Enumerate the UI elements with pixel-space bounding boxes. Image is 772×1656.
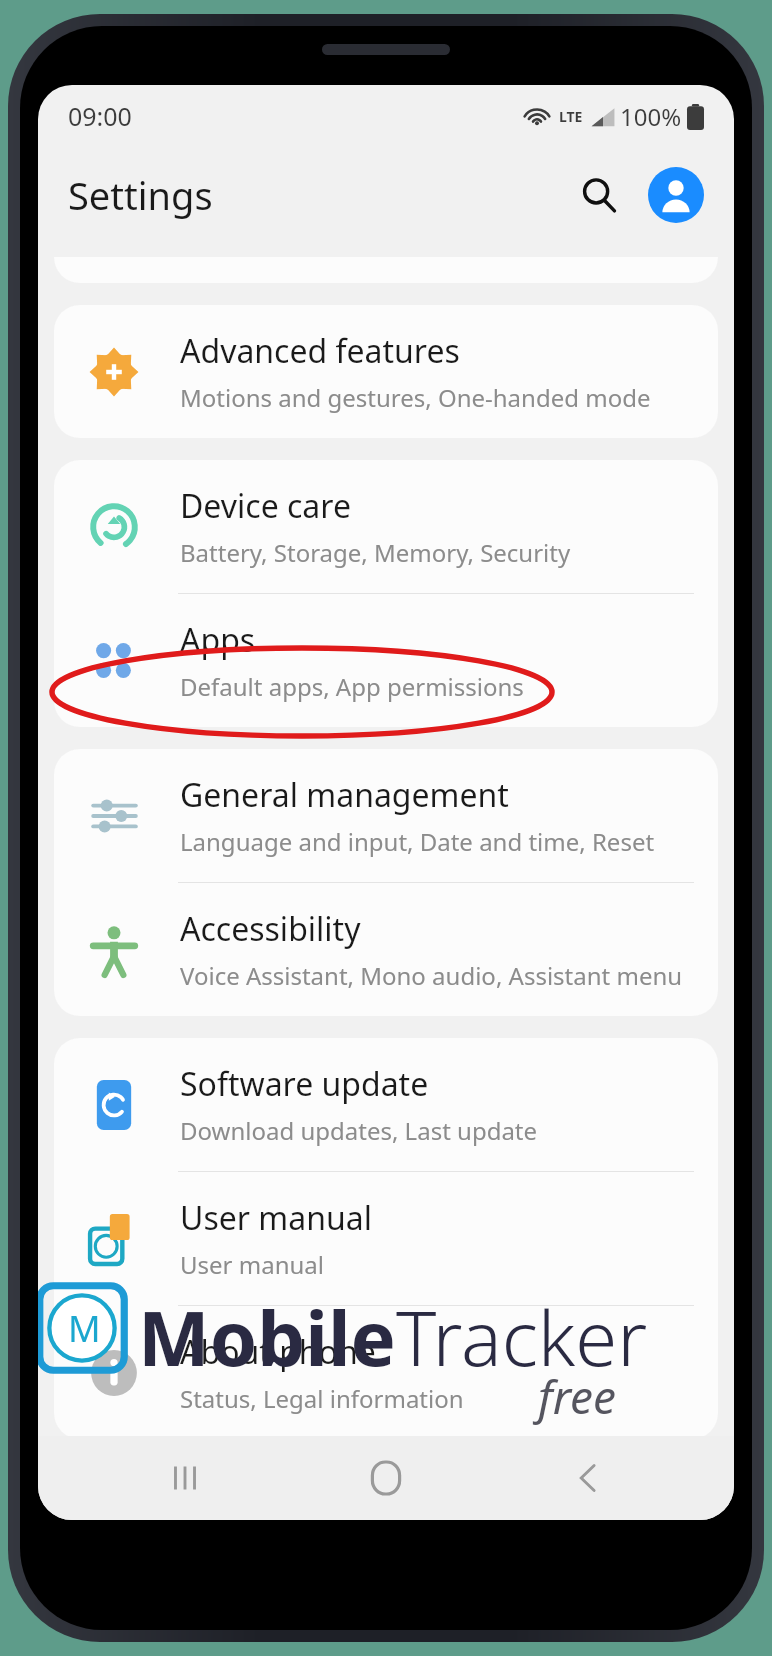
staticText: M: [68, 1304, 101, 1353]
staticText: Accessibility: [180, 907, 361, 951]
button[interactable]: Software update: [54, 1038, 718, 1171]
staticText: Motions and gestures, One-handed mode: [180, 381, 651, 414]
staticText: Voice Assistant, Mono audio, Assistant m…: [180, 959, 683, 992]
button[interactable]: Apps: [54, 594, 718, 727]
button[interactable]: Back: [533, 1441, 643, 1515]
staticText: Default apps, App permissions: [180, 670, 524, 703]
button[interactable]: Home: [331, 1441, 441, 1515]
staticText: Advanced features: [180, 329, 460, 373]
button[interactable]: User manual: [54, 1172, 718, 1305]
staticText: free: [538, 1365, 616, 1428]
staticText: Download updates, Last update: [180, 1114, 538, 1147]
staticText: About phone: [180, 1330, 376, 1374]
staticText: General management: [180, 773, 509, 817]
button[interactable]: Accessibility: [54, 883, 718, 1016]
staticText: 09:00: [68, 99, 132, 133]
button[interactable]: Device care: [54, 460, 718, 593]
staticText: 100%: [620, 100, 682, 133]
staticText: Mobile: [138, 1285, 396, 1389]
staticText: Apps: [180, 618, 256, 662]
button[interactable]: Recents: [130, 1441, 240, 1515]
button[interactable]: General management: [54, 749, 718, 882]
staticText: LTE: [559, 107, 583, 126]
staticText: Tracker: [396, 1285, 648, 1389]
staticText: Battery, Storage, Memory, Security: [180, 536, 571, 569]
button[interactable]: Search: [570, 166, 628, 224]
staticText: Language and input, Date and time, Reset: [180, 825, 655, 858]
button[interactable]: Account: [648, 167, 704, 223]
staticText: User manual: [180, 1196, 372, 1240]
button[interactable]: About phone: [54, 1306, 718, 1439]
staticText: User manual: [180, 1248, 324, 1281]
staticText: Settings: [68, 169, 213, 221]
button[interactable]: Advanced features: [54, 305, 718, 438]
staticText: Software update: [180, 1062, 429, 1106]
staticText: Status, Legal information: [180, 1382, 464, 1415]
staticText: Device care: [180, 484, 351, 528]
